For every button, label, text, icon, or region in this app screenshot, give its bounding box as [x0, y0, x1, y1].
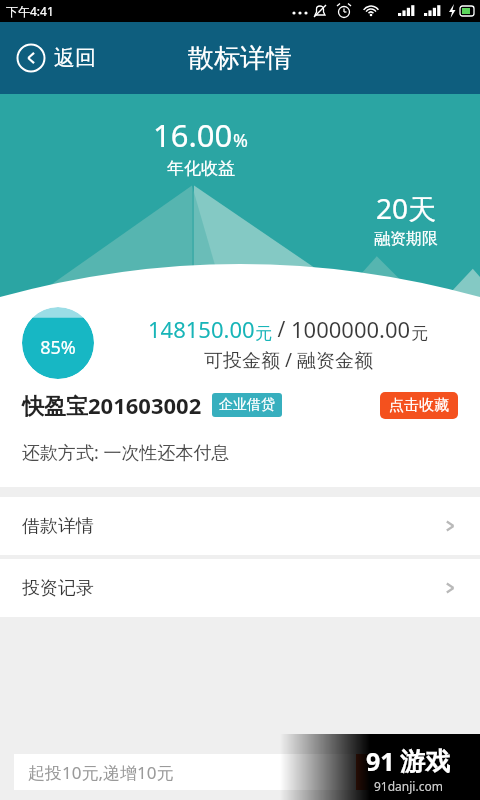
button[interactable]: 立即投资	[356, 754, 466, 790]
staticText: 散标详情	[188, 42, 292, 75]
button[interactable]: 企业借贷	[212, 393, 282, 417]
staticText: 企业借贷	[219, 396, 275, 414]
staticText: 可投金额 / 融资金额	[204, 347, 373, 373]
staticText: 元	[411, 323, 428, 344]
staticText: 91danji.com	[374, 778, 443, 794]
staticText: 点击收藏	[389, 396, 449, 415]
other: 返回	[16, 43, 46, 73]
button[interactable]: 返回	[12, 39, 100, 77]
staticText: 85%	[18, 335, 98, 360]
staticText: 下午4:41	[6, 3, 54, 19]
staticText: 返回	[54, 45, 96, 71]
staticText: 融资期限	[374, 229, 438, 249]
button[interactable]: 点击收藏	[380, 392, 458, 419]
staticText: /	[272, 315, 291, 344]
staticText: %	[233, 128, 248, 153]
staticText: 元	[255, 323, 272, 344]
staticText: 20天	[376, 189, 437, 227]
staticText: 年化收益	[167, 158, 235, 179]
button[interactable]: 借款详情	[0, 497, 480, 555]
staticText: 投资记录	[22, 577, 94, 600]
staticText: 91	[366, 744, 395, 778]
staticText: 立即投资	[375, 761, 447, 784]
staticText: 起投10元,递增10元	[28, 761, 174, 784]
staticText: 还款方式: 一次性还本付息	[22, 440, 230, 465]
button[interactable]: 投资记录	[0, 559, 480, 617]
staticText: 1000000.00	[291, 314, 411, 344]
staticText: 148150.00	[148, 314, 255, 344]
staticText: 借款详情	[22, 515, 94, 538]
staticText: 16.00	[153, 114, 233, 156]
staticText: 快盈宝201603002	[22, 390, 202, 420]
button[interactable]: 起投10元,递增10元	[14, 754, 356, 790]
staticText: 游戏	[400, 746, 450, 777]
